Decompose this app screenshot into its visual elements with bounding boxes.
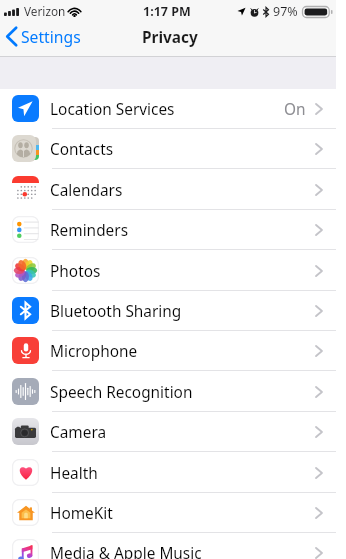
button[interactable]: HomeKit	[0, 493, 336, 533]
button[interactable]: Location Services	[0, 89, 336, 129]
staticText: Bluetooth Sharing	[50, 301, 182, 322]
button[interactable]: Reminders	[0, 210, 336, 250]
staticText: Speech Recognition	[50, 382, 193, 403]
staticText: Privacy	[142, 27, 198, 48]
staticText: Photos	[50, 261, 101, 282]
staticText: Health	[50, 463, 98, 484]
staticText: Settings	[21, 26, 81, 47]
button[interactable]: Settings	[0, 24, 87, 49]
button[interactable]: Bluetooth Sharing	[0, 291, 336, 331]
button[interactable]: Calendars	[0, 170, 336, 210]
staticText: Reminders	[50, 220, 128, 241]
staticText: On	[284, 99, 306, 120]
staticText: HomeKit	[50, 503, 113, 524]
button[interactable]: Media & Apple Music	[0, 533, 336, 559]
button[interactable]: Microphone	[0, 331, 336, 371]
staticText: Contacts	[50, 139, 114, 160]
staticText: 97%	[273, 3, 298, 20]
staticText: Verizon	[24, 3, 66, 19]
staticText: Media & Apple Music	[50, 543, 202, 559]
staticText: Microphone	[50, 341, 138, 362]
staticText: Calendars	[50, 180, 123, 201]
staticText: 1:17 PM	[143, 3, 191, 20]
button[interactable]: Speech Recognition	[0, 372, 336, 412]
button[interactable]: Health	[0, 453, 336, 493]
staticText: Camera	[50, 422, 107, 443]
button[interactable]: Camera	[0, 412, 336, 452]
staticText: Location Services	[50, 99, 175, 120]
button[interactable]: Contacts	[0, 129, 336, 169]
button[interactable]: Photos	[0, 251, 336, 291]
